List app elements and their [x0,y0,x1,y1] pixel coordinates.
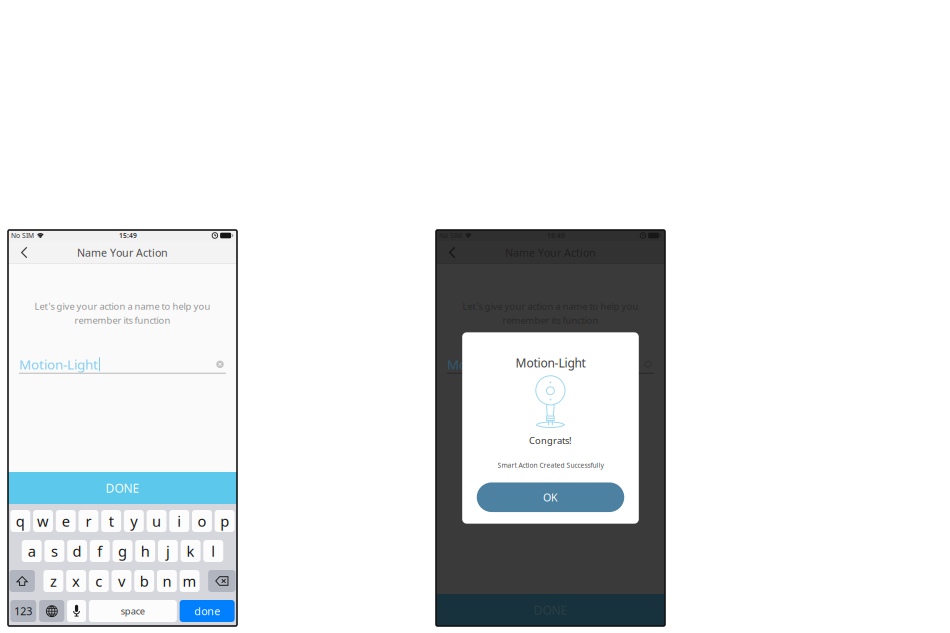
staticText: r [85,511,91,531]
button[interactable]: r [78,510,98,532]
button[interactable]: Change keyboard [39,600,64,622]
staticText: f [97,541,102,561]
button[interactable]: Delete [208,570,235,592]
staticText: j [166,541,170,561]
staticText: OK [543,490,558,504]
staticText: v [118,571,125,591]
staticText: 15:49 [119,231,137,240]
button[interactable]: e [56,510,76,532]
button[interactable]: done [180,600,235,622]
button[interactable]: z [43,570,63,592]
staticText: o [197,511,206,531]
staticText: p [220,511,229,531]
staticText: Let's give your action a name to help yo… [34,300,210,312]
staticText: Name Your Action [77,245,168,260]
staticText: m [183,571,197,591]
staticText: z [50,571,57,591]
staticText: g [118,541,127,561]
button[interactable]: u [147,510,166,532]
staticText: Motion-Light [19,355,98,373]
staticText: Let's give your action a name to help yo… [462,300,638,312]
staticText: Motion-Light [515,355,585,371]
button[interactable]: p [215,510,235,532]
staticText: k [187,541,195,561]
button[interactable]: n [157,570,177,592]
button[interactable]: k [181,540,200,562]
staticText: u [152,511,161,531]
staticText: Name Your Action [505,245,596,260]
button[interactable]: o [192,510,212,532]
staticText: e [62,511,70,531]
staticText: d [73,541,82,561]
button[interactable]: a [22,540,42,562]
button[interactable]: 123 [10,600,36,622]
staticText: a [28,541,36,561]
staticText: y [130,511,137,531]
button[interactable]: Clear text [214,358,226,370]
button[interactable]: Dictation [67,600,86,622]
button[interactable]: OK [477,482,624,512]
button[interactable]: c [89,570,109,592]
staticText: Motion-Light [447,355,526,373]
button[interactable]: g [112,540,132,562]
button[interactable]: v [111,570,131,592]
staticText: b [140,571,149,591]
button[interactable]: m [180,570,199,592]
staticText: l [211,541,215,561]
button[interactable]: s [44,540,64,562]
button[interactable]: Back [14,241,34,264]
staticText: x [72,571,80,591]
staticText: 123 [14,604,32,618]
staticText: i [177,511,181,531]
staticText: No SIM [11,231,34,240]
button[interactable]: j [158,540,178,562]
staticText: No SIM [439,231,462,240]
staticText: s [51,541,58,561]
staticText: Congrats! [529,434,572,447]
staticText: t [109,511,114,531]
button[interactable]: DONE [8,472,237,504]
staticText: w [37,511,49,531]
button[interactable]: Shift [9,570,35,592]
staticText: remember its function [74,314,170,326]
staticText: space [121,605,145,617]
staticText: Smart Action Created Successfully [497,461,603,470]
button[interactable]: d [67,540,87,562]
button[interactable]: b [134,570,154,592]
button[interactable]: w [33,510,53,532]
staticText: DONE [105,480,139,496]
button[interactable]: Back [442,241,462,264]
staticText: h [141,541,150,561]
button[interactable]: q [10,510,30,532]
button[interactable]: x [66,570,86,592]
button[interactable]: t [101,510,121,532]
staticText: n [162,571,171,591]
staticText: DONE [533,602,567,618]
button[interactable]: space [89,600,177,622]
staticText: c [95,571,102,591]
button[interactable]: y [124,510,144,532]
button[interactable]: h [135,540,155,562]
staticText: q [16,511,25,531]
staticText: done [194,604,220,618]
staticText: 15:49 [547,231,565,240]
button[interactable]: f [90,540,110,562]
staticText: remember its function [502,314,598,326]
button[interactable]: i [169,510,189,532]
button[interactable]: l [203,540,223,562]
